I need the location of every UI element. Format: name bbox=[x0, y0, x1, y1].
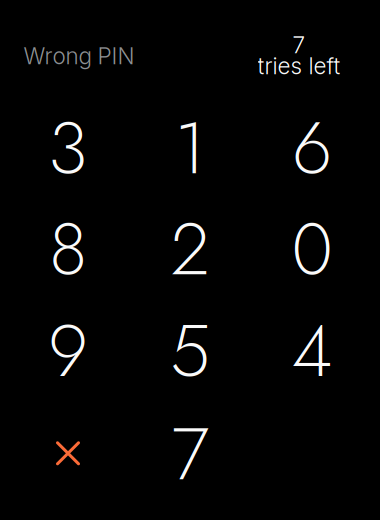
staticText: 3 bbox=[48, 96, 88, 200]
staticText: 5 bbox=[170, 299, 210, 403]
button[interactable]: 8 bbox=[9, 200, 127, 298]
staticText: 8 bbox=[49, 197, 87, 301]
staticText: 1 bbox=[174, 96, 205, 200]
staticText: 9 bbox=[48, 299, 88, 403]
staticText: 7 bbox=[171, 402, 208, 506]
button[interactable]: 6 bbox=[253, 99, 371, 197]
staticText: 6 bbox=[292, 96, 332, 200]
staticText: 7 bbox=[292, 31, 305, 59]
button[interactable]: 9 bbox=[9, 302, 127, 400]
button[interactable]: 2 bbox=[131, 200, 249, 298]
button[interactable]: 1 bbox=[131, 99, 249, 197]
button[interactable]: Delete bbox=[9, 405, 127, 503]
button[interactable]: 5 bbox=[131, 302, 249, 400]
button[interactable]: 3 bbox=[9, 99, 127, 197]
button[interactable]: 0 bbox=[253, 200, 371, 298]
staticText: tries left bbox=[257, 52, 340, 80]
button[interactable]: 4 bbox=[253, 302, 371, 400]
staticText: 2 bbox=[170, 197, 209, 301]
staticText: 4 bbox=[291, 299, 332, 403]
staticText: 0 bbox=[291, 197, 332, 301]
staticText: Wrong PIN bbox=[23, 42, 134, 70]
button[interactable]: 7 bbox=[131, 405, 249, 503]
